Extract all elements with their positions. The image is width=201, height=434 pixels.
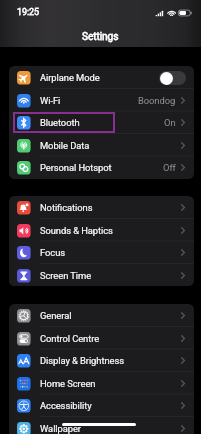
staticText: Wi-Fi xyxy=(40,95,61,106)
staticText: Sounds & Haptics xyxy=(40,225,113,236)
staticText: Settings xyxy=(82,31,119,43)
button[interactable]: Sounds & Haptics xyxy=(9,219,194,242)
button[interactable]: Accessibility xyxy=(9,394,194,417)
button[interactable]: Focus xyxy=(9,241,194,264)
button[interactable]: Control Centre xyxy=(9,327,194,350)
button[interactable]: Personal Hotspot xyxy=(9,156,194,179)
staticText: Control Centre xyxy=(40,333,100,344)
staticText: Mobile Data xyxy=(40,140,90,151)
staticText: Bluetooth xyxy=(40,117,80,128)
button[interactable]: Home Screen xyxy=(9,372,194,395)
button[interactable]: Screen Time xyxy=(9,264,194,286)
button[interactable]: Notifications xyxy=(9,196,194,219)
staticText: Wallpaper xyxy=(40,423,81,434)
button[interactable]: Airplane Mode xyxy=(9,66,194,89)
staticText: Airplane Mode xyxy=(40,72,100,83)
button[interactable]: Wi-Fi xyxy=(9,89,194,112)
staticText: 19:25 xyxy=(17,7,39,18)
staticText: Focus xyxy=(40,247,65,258)
staticText: General xyxy=(40,310,72,321)
staticText: Accessibility xyxy=(40,400,92,411)
button[interactable]: General xyxy=(9,304,194,327)
staticText: Notifications xyxy=(40,202,93,213)
staticText: Boondog xyxy=(138,95,176,106)
button[interactable]: Mobile Data xyxy=(9,134,194,157)
staticText: Home Screen xyxy=(40,378,96,389)
button[interactable]: Wallpaper xyxy=(9,417,194,434)
staticText: Display & Brightness xyxy=(40,355,124,366)
staticText: Off xyxy=(163,162,176,173)
staticText: Screen Time xyxy=(40,270,92,281)
button[interactable]: Display & Brightness xyxy=(9,349,194,372)
staticText: On xyxy=(164,117,176,128)
button[interactable]: Bluetooth xyxy=(9,111,194,134)
staticText: Personal Hotspot xyxy=(40,162,112,173)
